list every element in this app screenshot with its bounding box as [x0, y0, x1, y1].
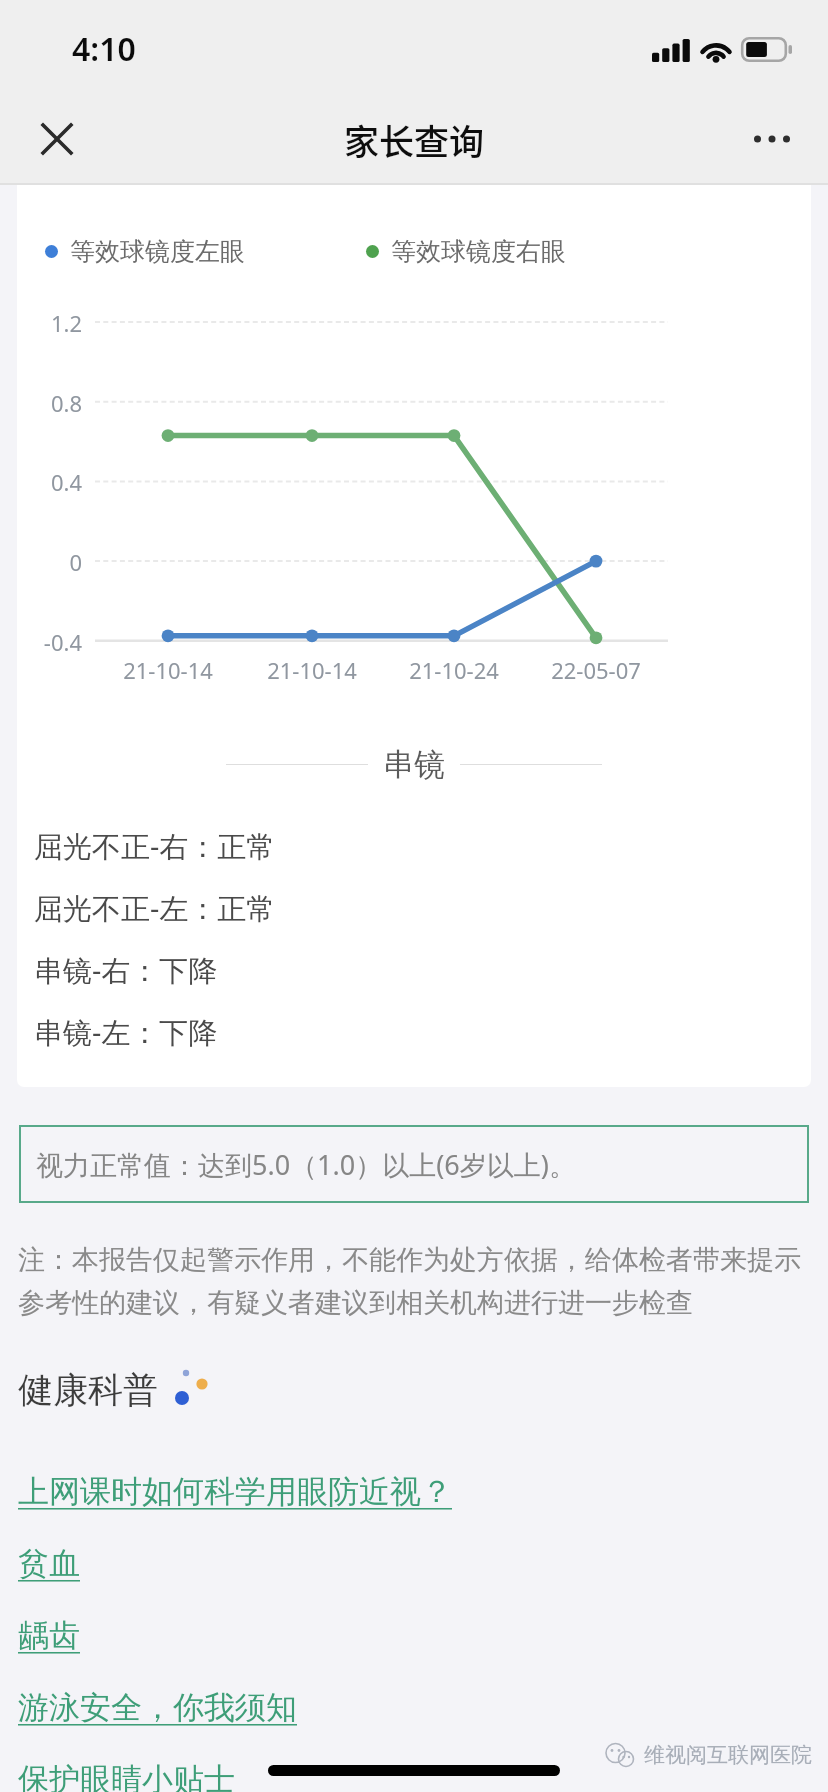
button[interactable]: 贫血: [0, 1544, 828, 1616]
button[interactable]: 保护眼睛小贴士: [0, 1760, 828, 1792]
button[interactable]: 上网课时如何科学用眼防近视？: [0, 1472, 828, 1544]
staticText: 21-10-14: [252, 655, 372, 685]
staticText: 21-10-24: [394, 655, 514, 685]
staticText: 串镜-右：下降: [34, 950, 218, 990]
staticText: 游泳安全，你我须知: [18, 1688, 297, 1727]
button[interactable]: Close: [26, 108, 88, 170]
staticText: 等效球镜度右眼: [391, 236, 566, 267]
staticText: 保护眼睛小贴士: [18, 1760, 235, 1792]
staticText: 家长查询: [344, 114, 485, 165]
button[interactable]: More options: [741, 108, 803, 170]
staticText: 1.2: [17, 308, 82, 338]
staticText: 22-05-07: [536, 655, 656, 685]
staticText: 串镜-左：下降: [34, 1012, 218, 1052]
staticText: -0.4: [17, 627, 82, 657]
staticText: 0.4: [17, 467, 82, 497]
staticText: 4:10: [72, 27, 136, 71]
button[interactable]: 游泳安全，你我须知: [0, 1688, 828, 1760]
button[interactable]: 龋齿: [0, 1616, 828, 1688]
staticText: 屈光不正-右：正常: [34, 826, 276, 866]
staticText: 串镜: [383, 745, 445, 784]
staticText: 21-10-14: [108, 655, 228, 685]
staticText: 屈光不正-左：正常: [34, 888, 276, 928]
staticText: 注：本报告仅起警示作用，不能作为处方依据，给体检者带来提示参考性的建议，有疑义者…: [18, 1243, 810, 1320]
staticText: 龋齿: [18, 1616, 80, 1655]
staticText: 健康科普: [18, 1368, 158, 1412]
staticText: 维视阅互联网医院: [644, 1742, 812, 1768]
staticText: 0.8: [17, 388, 82, 418]
staticText: 0: [17, 547, 82, 577]
staticText: 贫血: [18, 1544, 80, 1583]
staticText: 上网课时如何科学用眼防近视？: [18, 1472, 452, 1511]
staticText: 等效球镜度左眼: [70, 236, 245, 267]
staticText: 视力正常值：达到5.0（1.0）以上(6岁以上)。: [36, 1146, 576, 1183]
